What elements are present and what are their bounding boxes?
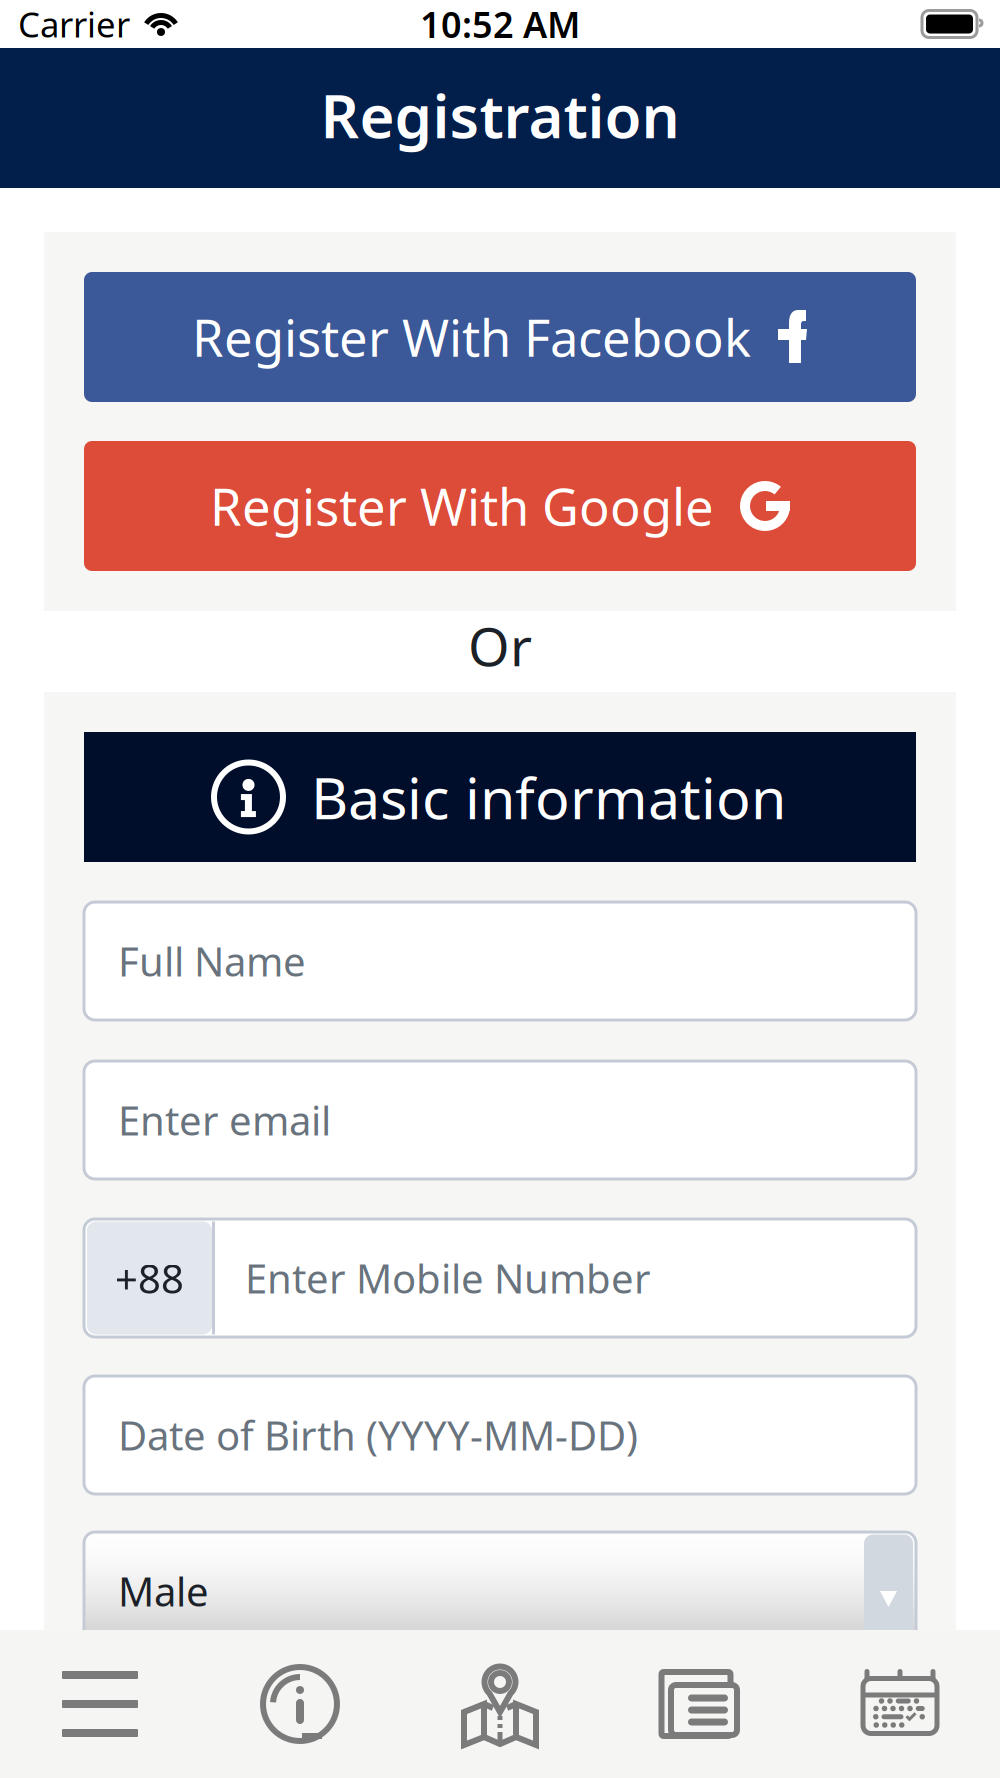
- button[interactable]: Male: [84, 1532, 916, 1650]
- button[interactable]: Calendar: [800, 1630, 1000, 1778]
- button[interactable]: Register With Facebook: [84, 272, 916, 402]
- button[interactable]: Map: [400, 1630, 600, 1778]
- button[interactable]: News: [600, 1630, 800, 1778]
- staticText: Register With Facebook: [192, 303, 751, 371]
- staticText: Date of Birth (YYYY-MM-DD): [118, 1408, 638, 1461]
- staticText: Basic information: [311, 759, 786, 835]
- staticText: 10:52 AM: [420, 0, 580, 48]
- staticText: Register With Google: [210, 472, 714, 540]
- staticText: Or: [468, 610, 532, 681]
- staticText: Enter email: [118, 1093, 331, 1146]
- staticText: +88: [115, 1251, 184, 1304]
- button[interactable]: Register With Google: [84, 441, 916, 571]
- staticText: Male: [118, 1564, 209, 1617]
- staticText: Enter Mobile Number: [245, 1251, 651, 1304]
- staticText: Full Name: [118, 934, 306, 987]
- button[interactable]: Information: [200, 1630, 400, 1778]
- staticText: Carrier: [18, 1, 130, 47]
- staticText: Registration: [320, 75, 679, 155]
- button[interactable]: Menu: [0, 1630, 200, 1778]
